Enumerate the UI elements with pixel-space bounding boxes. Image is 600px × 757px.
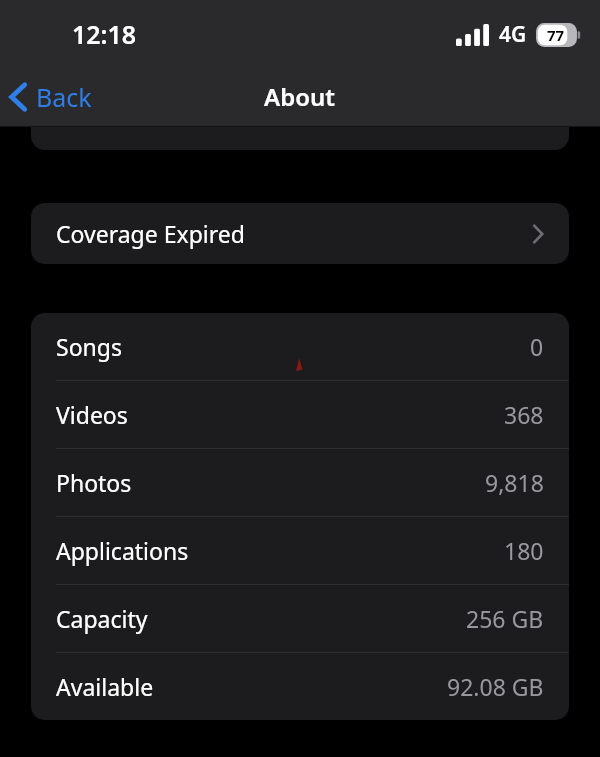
button[interactable]: Songs [31,313,569,380]
staticText: Videos [56,399,504,430]
button[interactable]: Available [31,653,569,720]
staticText: 368 [504,399,544,430]
staticText: About [264,80,336,113]
staticText: Back [36,80,92,114]
staticText: Photos [56,467,485,498]
other: Open [532,224,544,244]
button[interactable]: Applications [31,517,569,584]
staticText: Applications [56,535,504,566]
staticText: Coverage Expired [56,218,532,249]
staticText: 12:18 [72,17,137,51]
button[interactable] [31,125,569,150]
staticText: Songs [56,331,530,362]
button[interactable]: Back [0,74,106,120]
button[interactable]: Photos [31,449,569,516]
staticText: 256 GB [466,603,544,634]
staticText: 4G [499,20,527,49]
button[interactable]: Capacity [31,585,569,652]
staticText: 92.08 GB [447,671,544,702]
button[interactable]: Videos [31,381,569,448]
staticText: 77 [547,25,565,45]
staticText: Available [56,671,447,702]
staticText: 180 [504,535,544,566]
other: Back [10,83,26,111]
staticText: Capacity [56,603,466,634]
button[interactable]: Coverage Expired [31,203,569,264]
staticText: 0 [530,331,544,362]
staticText: 9,818 [485,467,544,498]
